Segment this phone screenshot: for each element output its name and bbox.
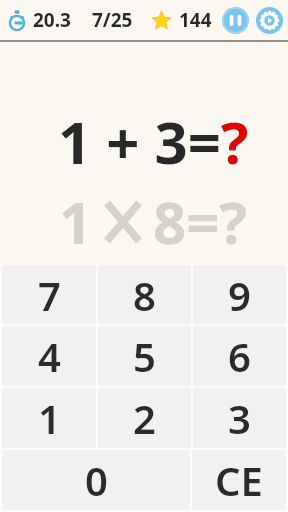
button[interactable]	[222, 7, 249, 34]
staticText: 8	[133, 268, 156, 322]
button[interactable]: CE	[192, 450, 286, 510]
button[interactable]: 8	[98, 265, 191, 324]
staticText: 8=?	[153, 182, 248, 261]
staticText: 1 + 3=?	[58, 102, 249, 181]
staticText: 9	[228, 268, 251, 322]
button[interactable]: 3	[193, 388, 286, 448]
button[interactable]: 2	[98, 388, 191, 448]
staticText: 1	[59, 182, 93, 261]
staticText: 144	[179, 7, 212, 33]
staticText: 2	[133, 391, 156, 445]
staticText: 20.3	[33, 7, 71, 33]
button[interactable]: 7	[2, 265, 96, 324]
staticText: 4	[38, 329, 61, 383]
button[interactable]: 5	[98, 326, 191, 386]
button[interactable]	[256, 7, 283, 34]
staticText: 3	[228, 391, 251, 445]
staticText: 5	[133, 329, 156, 383]
button[interactable]: 4	[2, 326, 96, 386]
button[interactable]: 1	[2, 388, 96, 448]
staticText: CE	[215, 453, 263, 507]
staticText: 7/25	[92, 7, 133, 33]
staticText: 7	[38, 268, 61, 322]
button[interactable]: 9	[193, 265, 286, 324]
staticText: 6	[228, 329, 251, 383]
staticText: 0	[85, 453, 108, 507]
button[interactable]: 0	[2, 450, 190, 510]
button[interactable]: 6	[193, 326, 286, 386]
staticText: 1	[38, 391, 61, 445]
